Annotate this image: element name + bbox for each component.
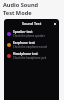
staticText: Speaker test — [13, 30, 33, 34]
button[interactable]: Close — [53, 22, 57, 26]
staticText: Earphone test — [13, 41, 35, 45]
staticText: Test Mode — [3, 9, 32, 17]
staticText: Check the phone speaker — [13, 34, 45, 38]
button[interactable]: Earphone test — [4, 39, 59, 50]
staticText: Check the headphone jack — [13, 56, 47, 60]
staticText: Check the earphone sound — [13, 45, 47, 49]
staticText: Audio Sound — [3, 1, 39, 9]
staticText: Sound Test — [22, 21, 42, 26]
button[interactable]: Speaker test — [4, 28, 59, 39]
button[interactable]: Headphone test — [4, 50, 59, 61]
staticText: Headphone test — [13, 52, 38, 56]
